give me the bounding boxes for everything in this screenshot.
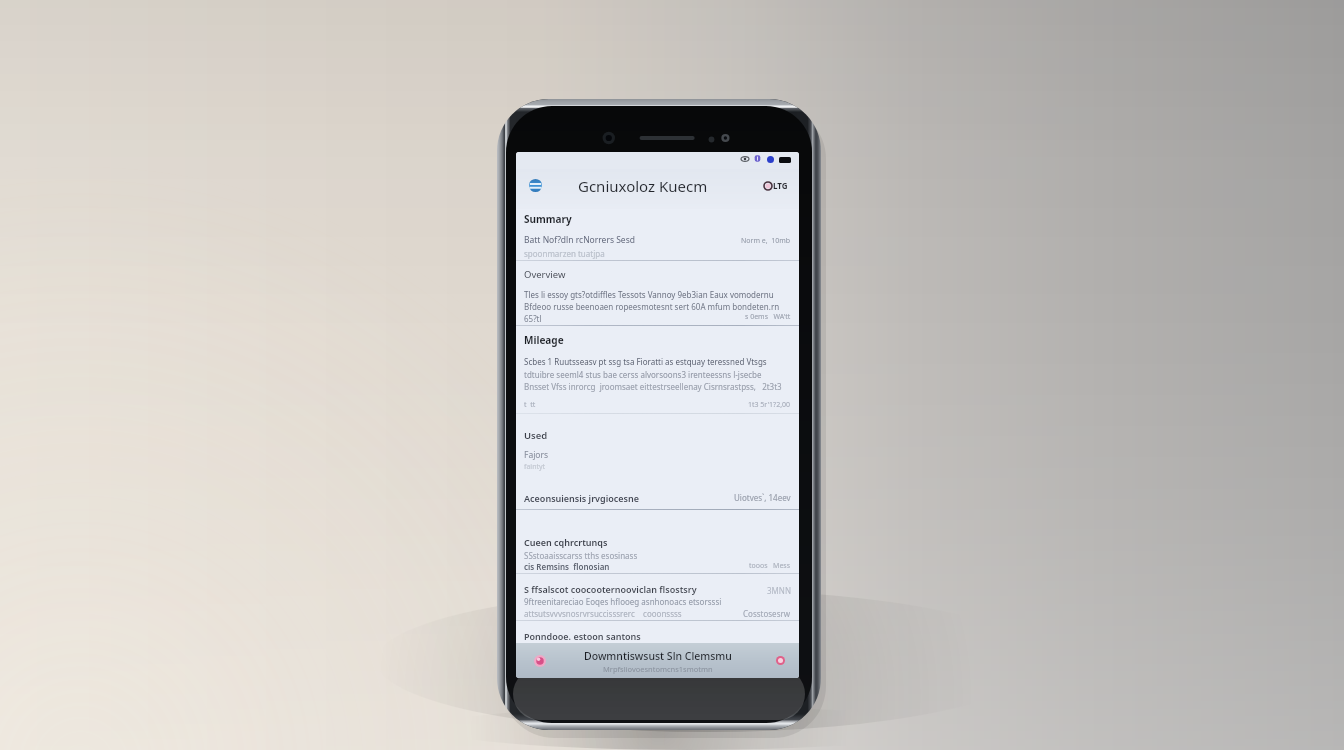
button[interactable]: LTG xyxy=(762,178,790,193)
staticText: Bfdeoo russe beenoaen ropeesmotesnt sert… xyxy=(524,301,780,312)
button[interactable]: Used xyxy=(516,422,799,474)
button[interactable]: Ponndooe. estoon santons xyxy=(516,621,799,643)
button[interactable]: Aceonsuiensis jrvgiocesne xyxy=(516,486,799,509)
staticText: Mileage xyxy=(524,333,564,347)
staticText: 1t3 5r'1?2,00 xyxy=(748,400,791,410)
staticText: attsutsvvvsnosrvrsuccisssrerc cooonssss xyxy=(524,608,682,619)
button[interactable]: S ffsalscot coocooternooviclan flsostsry xyxy=(516,576,799,620)
staticText: tdtuibre seeml4 stus bae cerss alvorsoon… xyxy=(524,369,762,380)
staticText: SSstoaaisscarss tths esosinass xyxy=(524,550,638,561)
staticText: Dowmntiswsust Sln Clemsmu xyxy=(584,649,732,663)
staticText: LTG xyxy=(773,180,788,191)
staticText: Ponndooe. estoon santons xyxy=(524,630,641,642)
staticText: 9ftreenitareciao Eoqes hflooeg asnhonoac… xyxy=(524,596,722,607)
staticText: faintyt xyxy=(524,462,546,472)
staticText: Cosstosesrw xyxy=(743,608,791,619)
button[interactable]: Mileage xyxy=(516,328,799,413)
staticText: Bnsset Vfss inrorcg jroomsaet eittestrse… xyxy=(524,381,782,392)
staticText: Overview xyxy=(524,268,566,281)
staticText: Summary xyxy=(524,212,572,226)
button[interactable]: Notifications xyxy=(763,643,798,678)
staticText: Scbes 1 Ruutsseasv pt ssg tsa Fioratti a… xyxy=(524,356,767,367)
button[interactable]: Summary xyxy=(516,205,799,260)
staticText: Batt Nof?dln rcNorrers Sesd xyxy=(524,234,635,246)
staticText: 3MNN xyxy=(767,585,791,596)
staticText: tooos Mess xyxy=(749,561,791,571)
staticText: Norm e, 10mb xyxy=(741,236,791,246)
button[interactable]: Record xyxy=(522,643,558,678)
staticText: Aceonsuiensis jrvgiocesne xyxy=(524,492,639,504)
button[interactable]: Overview xyxy=(516,261,799,325)
staticText: t tt xyxy=(524,400,536,410)
staticText: spoonmarzen tuatjpa xyxy=(524,248,605,259)
staticText: Cueen cqhrcrtunqs xyxy=(524,536,608,548)
staticText: Mrpfsliovoesntomcns1smotmn xyxy=(603,664,713,674)
staticText: Used xyxy=(524,429,548,442)
staticText: 65?tl xyxy=(524,313,542,324)
button[interactable]: App logo menu xyxy=(524,174,546,196)
staticText: Fajors xyxy=(524,449,549,461)
staticText: s 0ems WA'tt xyxy=(745,312,791,322)
button[interactable]: Cueen cqhrcrtunqs xyxy=(516,530,799,573)
button[interactable]: Dowmntiswsust Sln Clemsmu xyxy=(564,643,751,678)
staticText: Uiotves`, 14eev xyxy=(734,492,791,503)
staticText: cis Remsins flonosian xyxy=(524,561,610,572)
staticText: S ffsalscot coocooternooviclan flsostsry xyxy=(524,583,697,595)
staticText: Gcniuxoloz Kuecm xyxy=(578,176,708,196)
staticText: Tles li essoy gts?otdiffles Tessots Vann… xyxy=(524,289,774,300)
